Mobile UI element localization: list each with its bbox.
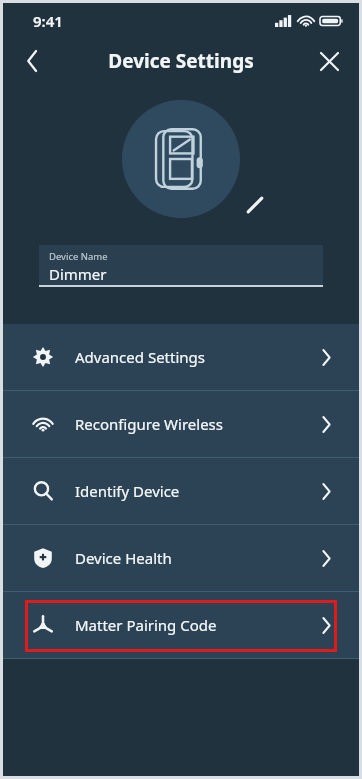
staticText: 9:41 [33,11,63,31]
button[interactable]: Device Name [39,245,323,287]
staticText: Matter Pairing Code [75,615,217,635]
staticText: Dimmer [49,264,107,284]
button[interactable]: Matter Pairing Code [3,592,359,658]
staticText: Device Name [49,250,108,263]
button[interactable]: Close [307,39,351,83]
staticText: Identify Device [75,481,180,501]
staticText: Reconfigure Wireless [75,414,223,434]
button[interactable]: Reconfigure Wireless [3,391,359,457]
button[interactable]: Identify Device [3,458,359,524]
staticText: Device Settings [108,48,254,74]
staticText: Device Health [75,548,172,568]
button[interactable]: Device Health [3,525,359,591]
button[interactable]: Back [11,39,55,83]
button[interactable]: Advanced Settings [3,324,359,390]
staticText: Advanced Settings [75,347,205,367]
button[interactable]: Edit device icon [238,188,272,222]
